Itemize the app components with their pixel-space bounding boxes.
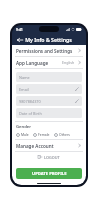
staticText: Name [19,75,30,80]
staticText: Female [38,132,50,137]
button[interactable]: App Language [12,57,86,68]
button[interactable]: Name [16,72,82,82]
button[interactable]: Date of Birth [16,108,82,118]
staticText: My Info & Settings [25,36,72,43]
button[interactable]: 9807884370 [16,96,82,106]
button[interactable]: Back [16,36,24,44]
button[interactable]: Male [16,132,29,137]
button[interactable]: UPDATE PROFILE [16,168,82,179]
staticText: Date of Birth [19,111,42,116]
button[interactable]: Others [54,132,70,137]
staticText: Gender [16,124,32,130]
staticText: 9:41 [16,27,23,32]
button[interactable]: Manage Account [12,140,86,151]
staticText: English [62,60,75,65]
staticText: UPDATE PROFILE [32,171,67,177]
staticText: LOGOUT [44,155,60,160]
button[interactable]: LOGOUT [12,152,86,162]
staticText: Male [21,132,29,137]
staticText: 9807884370 [19,99,41,104]
button[interactable]: Female [33,132,50,137]
button[interactable]: Permissions and Settings [12,45,86,56]
staticText: Manage Account [16,143,54,149]
staticText: Others [59,132,70,137]
staticText: Permissions and Settings [16,48,73,54]
button[interactable]: Email [16,84,82,94]
staticText: App Language [16,60,49,66]
staticText: Email [19,87,29,92]
